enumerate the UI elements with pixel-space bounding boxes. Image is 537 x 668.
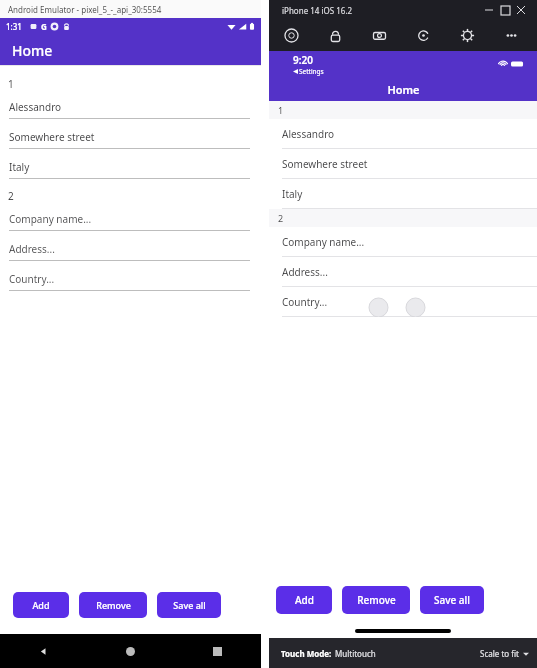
button[interactable]: Alessandro (269, 119, 537, 149)
staticText: Country... (9, 272, 55, 286)
staticText: Save all (434, 593, 470, 607)
staticText: iPhone 14 iOS 16.2 (282, 5, 353, 16)
button[interactable]: Company name... (269, 227, 537, 257)
staticText: Save all (173, 599, 206, 611)
button[interactable]: Minimize (481, 2, 497, 18)
staticText: Scale to fit (480, 648, 519, 659)
staticText: Add (32, 599, 50, 611)
button[interactable]: Add (13, 592, 69, 618)
staticText: 2 (8, 189, 14, 203)
staticText: Touch Mode: (281, 648, 332, 659)
staticText: Multitouch (335, 648, 376, 659)
staticText: 9:20 (293, 53, 313, 67)
staticText: Remove (357, 593, 396, 607)
button[interactable]: Home (87, 634, 174, 668)
staticText: Add (295, 593, 314, 607)
button[interactable]: Save all (157, 592, 221, 618)
staticText: Address... (9, 242, 55, 256)
button[interactable]: Close (513, 2, 529, 18)
button[interactable]: Home (269, 20, 313, 51)
staticText: Italy (282, 187, 303, 201)
button[interactable]: Settings (445, 20, 489, 51)
staticText: Android Emulator - pixel_5_-_api_30:5554 (8, 4, 162, 15)
button[interactable]: More options (489, 20, 533, 51)
button[interactable]: Country... (0, 267, 261, 297)
staticText: Alessandro (282, 127, 335, 141)
button[interactable]: Remove (79, 592, 147, 618)
button[interactable]: Country... (269, 287, 537, 317)
button[interactable]: Address... (269, 257, 537, 287)
staticText: 2 (278, 212, 284, 224)
staticText: 1 (278, 104, 284, 116)
button[interactable]: Back (0, 634, 87, 668)
staticText: Address... (282, 265, 328, 279)
button[interactable]: Rotate (401, 20, 445, 51)
staticText: Company name... (9, 212, 92, 226)
staticText: Somewhere street (9, 130, 95, 144)
button[interactable]: Add (276, 586, 332, 614)
staticText: G (41, 21, 47, 32)
staticText: Settings (299, 67, 324, 76)
button[interactable]: Somewhere street (269, 149, 537, 179)
staticText: Italy (9, 160, 30, 174)
button[interactable]: Address... (0, 237, 261, 267)
button[interactable]: Alessandro (0, 95, 261, 125)
staticText: Remove (96, 599, 131, 611)
staticText: Home (387, 82, 420, 97)
staticText: Company name... (282, 235, 365, 249)
button[interactable]: Somewhere street (0, 125, 261, 155)
button[interactable]: Lock (313, 20, 357, 51)
staticText: 1:31 (6, 21, 22, 32)
staticText: Home (12, 41, 53, 60)
staticText: Somewhere street (282, 157, 368, 171)
button[interactable]: Remove (342, 586, 410, 614)
button[interactable]: Maximize (497, 2, 513, 18)
button[interactable]: Scale to fit (480, 648, 529, 659)
button[interactable]: Save all (420, 586, 484, 614)
button[interactable]: Recent apps (174, 634, 261, 668)
staticText: Alessandro (9, 100, 62, 114)
staticText: Country... (282, 295, 328, 309)
button[interactable]: Company name... (0, 207, 261, 237)
button[interactable]: Screenshot (357, 20, 401, 51)
button[interactable]: Italy (0, 155, 261, 185)
button[interactable]: Italy (269, 179, 537, 209)
staticText: 1 (8, 77, 14, 91)
